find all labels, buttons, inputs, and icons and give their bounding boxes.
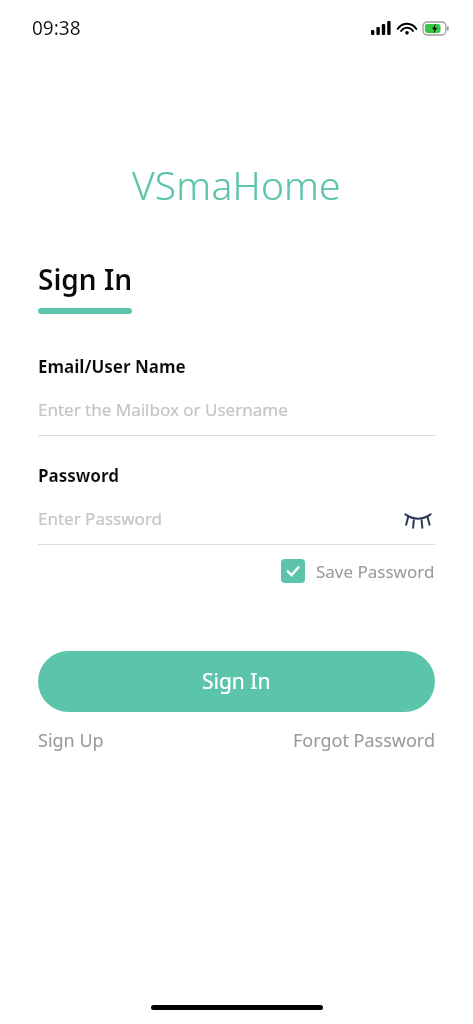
button[interactable]: Sign Up	[38, 728, 104, 753]
button[interactable]: Forgot Password	[292, 728, 435, 753]
button[interactable]: Sign In	[38, 651, 435, 712]
staticText: Forgot Password	[292, 728, 435, 753]
button[interactable]: Show password	[401, 505, 435, 531]
button[interactable]: Save Password	[281, 559, 435, 583]
staticText: Email/User Name	[38, 355, 186, 378]
staticText: Save Password	[316, 560, 435, 583]
staticText: 09:38	[32, 15, 81, 41]
staticText: Sign In	[202, 667, 271, 696]
button[interactable]: Enter the Mailbox or Username	[38, 396, 435, 422]
staticText: Password	[38, 464, 119, 487]
button[interactable]: Enter Password	[38, 505, 401, 531]
staticText: Sign Up	[38, 728, 104, 753]
staticText: Enter Password	[38, 507, 163, 530]
staticText: VSmaHome	[132, 158, 341, 211]
staticText: Sign In	[38, 260, 133, 298]
staticText: Enter the Mailbox or Username	[38, 398, 288, 421]
